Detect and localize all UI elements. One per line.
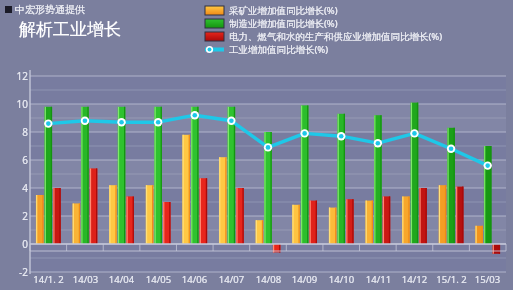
- staticText: 采矿业增加值同比增长(%): [229, 4, 338, 17]
- button[interactable]: 14/05: [140, 273, 177, 286]
- button[interactable]: 14/09: [286, 273, 323, 286]
- staticText: 中宏形势通提供: [15, 3, 85, 16]
- button[interactable]: 工业增加值同比增长图表: [30, 76, 506, 272]
- staticText: 4: [2, 181, 28, 195]
- button[interactable]: 14/11: [360, 273, 397, 286]
- staticText: 制造业增加值同比增长(%): [229, 17, 338, 30]
- staticText: 10: [2, 97, 28, 111]
- button[interactable]: 工业增加值同比增长(%): [205, 43, 329, 56]
- staticText: 12: [2, 69, 28, 83]
- staticText: 8: [2, 125, 28, 139]
- staticText: 0: [2, 237, 28, 251]
- button[interactable]: 14/10: [323, 273, 360, 286]
- button[interactable]: 14/06: [176, 273, 213, 286]
- staticText: 6: [2, 153, 28, 167]
- button[interactable]: 14/03: [67, 273, 104, 286]
- button[interactable]: 14/04: [103, 273, 140, 286]
- staticText: 2: [2, 209, 28, 223]
- button[interactable]: 14/07: [213, 273, 250, 286]
- button[interactable]: 14/12: [396, 273, 433, 286]
- button[interactable]: 15/1. 2: [433, 273, 470, 286]
- button[interactable]: 采矿业增加值同比增长(%): [205, 4, 338, 17]
- button[interactable]: 14/1. 2: [30, 273, 67, 286]
- button[interactable]: 15/03: [469, 273, 506, 286]
- button[interactable]: 电力、燃气和水的生产和供应业增加值同比增长(%): [205, 30, 443, 43]
- staticText: 解析工业增长: [19, 19, 121, 40]
- button[interactable]: 14/08: [250, 273, 287, 286]
- staticText: -2: [2, 265, 28, 279]
- button[interactable]: 制造业增加值同比增长(%): [205, 17, 338, 30]
- staticText: 电力、燃气和水的生产和供应业增加值同比增长(%): [229, 30, 443, 43]
- staticText: 工业增加值同比增长(%): [229, 43, 329, 56]
